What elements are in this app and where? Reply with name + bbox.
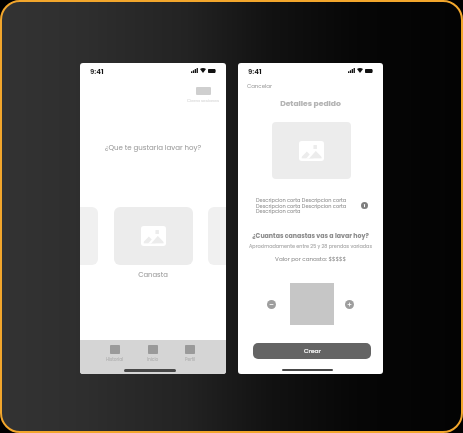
button[interactable]: [114, 207, 193, 265]
staticText: Historial: [106, 356, 124, 362]
button[interactable]: Historial: [97, 345, 133, 362]
staticText: Crear: [304, 347, 321, 355]
staticText: Cierra sesiones: [187, 98, 220, 104]
staticText: 9:41: [248, 67, 262, 77]
button[interactable]: Cancelar: [247, 82, 273, 90]
staticText: Detalles pedido: [238, 98, 383, 109]
staticText: 9:41: [90, 67, 104, 77]
staticText: Aproximadamente entre 25 y 28 prendas va…: [238, 243, 383, 250]
staticText: Descripcion corta Descripcion corta Desc…: [256, 197, 347, 215]
button[interactable]: Cierra sesiones: [180, 87, 226, 104]
button[interactable]: Perfil: [172, 345, 208, 362]
staticText: ¿Que te gustaria lavar hoy?: [80, 143, 226, 153]
button[interactable]: Crear: [253, 343, 371, 359]
staticText: Perfil: [185, 356, 196, 362]
button[interactable]: Decrease quantity: [267, 300, 276, 309]
staticText: Valor por canasta: $$$$$: [238, 255, 383, 263]
staticText: Inicio: [147, 356, 159, 362]
button[interactable]: Increase quantity: [345, 300, 354, 309]
button[interactable]: Inicio: [135, 345, 171, 362]
staticText: Canasta: [80, 270, 226, 280]
staticText: ¿Cuantas canastas vas a lavar hoy?: [238, 231, 383, 240]
button[interactable]: Information: [361, 202, 368, 209]
